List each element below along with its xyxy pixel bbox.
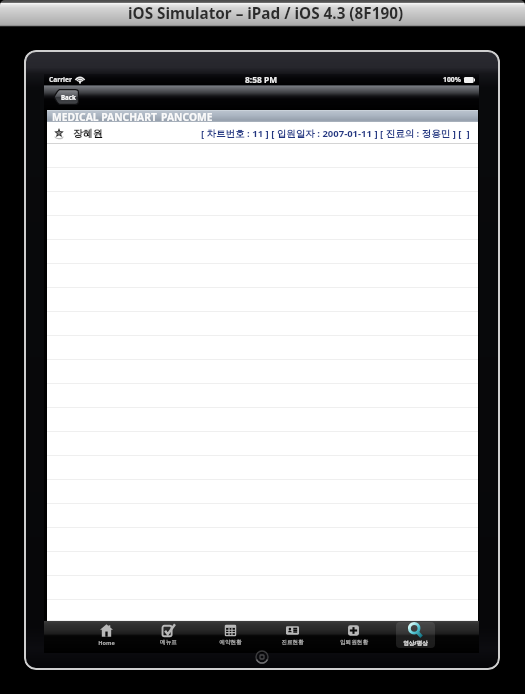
button[interactable]: 장혜원 xyxy=(47,122,478,144)
staticText: iOS Simulator – iPad / iOS 4.3 (8F190) xyxy=(128,3,404,24)
button[interactable]: 진료현황 xyxy=(273,622,312,648)
staticText: 진료현황 xyxy=(281,639,304,646)
button[interactable]: Home xyxy=(87,622,126,648)
staticText: Carrier xyxy=(49,75,72,84)
staticText: MEDICAL PANCHART_PANCOME xyxy=(52,110,213,122)
button[interactable] xyxy=(47,288,478,312)
staticText: 예약현황 xyxy=(219,639,242,646)
button[interactable] xyxy=(47,264,478,288)
button[interactable] xyxy=(47,408,478,432)
button[interactable] xyxy=(47,144,478,168)
button[interactable]: Back xyxy=(53,89,79,105)
button[interactable] xyxy=(47,432,478,456)
button[interactable] xyxy=(47,576,478,600)
button[interactable] xyxy=(47,456,478,480)
button[interactable] xyxy=(47,240,478,264)
staticText: 영상/평상 xyxy=(403,639,428,647)
staticText: 메뉴표 xyxy=(160,639,177,646)
button[interactable] xyxy=(47,480,478,504)
staticText: 8:58 PM xyxy=(245,74,278,85)
button[interactable]: 예약현황 xyxy=(211,622,250,648)
button[interactable] xyxy=(47,312,478,336)
staticText: Back xyxy=(61,93,76,101)
staticText: 입퇴원현황 xyxy=(340,639,368,646)
button[interactable]: 메뉴표 xyxy=(149,622,188,648)
button[interactable] xyxy=(47,552,478,576)
button[interactable] xyxy=(47,168,478,192)
button[interactable] xyxy=(47,600,478,621)
button[interactable] xyxy=(47,528,478,552)
staticText: 100% xyxy=(443,75,461,84)
staticText: [ 차트번호 : 11 ] [ 입원일자 : 2007-01-11 ] [ 진료… xyxy=(201,127,470,140)
button[interactable] xyxy=(47,384,478,408)
staticText: Home xyxy=(98,639,115,647)
button[interactable]: 영상/평상 xyxy=(396,622,435,648)
button[interactable]: 입퇴원현황 xyxy=(334,622,373,648)
button[interactable] xyxy=(47,192,478,216)
button[interactable] xyxy=(47,336,478,360)
button[interactable] xyxy=(47,216,478,240)
button[interactable] xyxy=(47,360,478,384)
button[interactable]: Home button xyxy=(255,650,269,664)
button[interactable] xyxy=(47,504,478,528)
staticText: 장혜원 xyxy=(73,127,103,140)
